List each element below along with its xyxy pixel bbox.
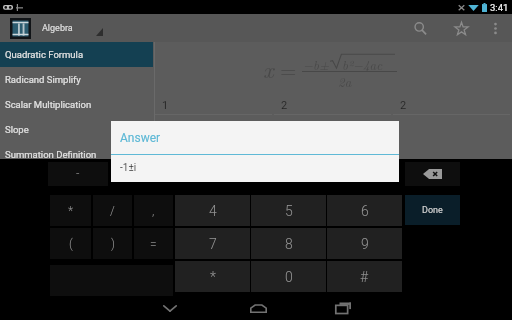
- button[interactable]: *: [50, 195, 91, 226]
- button[interactable]: Radicand Simplify: [0, 67, 155, 92]
- staticText: Quadratic Formula: [5, 49, 84, 60]
- button[interactable]: ): [93, 228, 132, 259]
- staticText: =: [150, 237, 157, 251]
- staticText: 2: [400, 99, 407, 112]
- staticText: b²−4ac: [342, 55, 383, 73]
- staticText: 3:41: [490, 2, 509, 13]
- staticText: 0: [285, 269, 293, 285]
- staticText: −b±: [303, 55, 329, 73]
- staticText: 9: [361, 236, 369, 252]
- staticText: -: [76, 167, 80, 181]
- staticText: 2a: [338, 72, 352, 90]
- staticText: 8: [285, 236, 293, 252]
- staticText: -1±i: [120, 162, 137, 174]
- staticText: /: [110, 204, 115, 218]
- button[interactable]: =: [134, 228, 173, 259]
- button[interactable]: Quadratic Formula: [0, 42, 155, 67]
- staticText: =: [280, 54, 297, 84]
- button[interactable]: Back: [154, 296, 186, 320]
- staticText: Scalar Multiplication: [5, 99, 92, 110]
- staticText: #: [360, 269, 369, 285]
- button[interactable]: Scalar Multiplication: [0, 92, 155, 117]
- staticText: 1: [162, 99, 169, 112]
- button[interactable]: -: [48, 162, 108, 186]
- button[interactable]: (: [50, 228, 91, 259]
- staticText: Radicand Simplify: [5, 74, 81, 85]
- staticText: x: [263, 52, 274, 85]
- button[interactable]: Slope: [0, 117, 155, 142]
- staticText: (: [69, 237, 73, 251]
- button[interactable]: 0: [251, 261, 326, 292]
- button[interactable]: *: [175, 261, 250, 292]
- staticText: *: [210, 269, 216, 285]
- staticText: *: [68, 204, 74, 218]
- staticText: Algebra: [42, 23, 73, 34]
- button[interactable]: /: [93, 195, 132, 226]
- button[interactable]: Recent apps: [327, 296, 359, 320]
- staticText: ): [111, 237, 115, 251]
- button[interactable]: Done: [405, 195, 460, 225]
- staticText: 2: [281, 99, 288, 112]
- staticText: Done: [422, 205, 443, 216]
- button[interactable]: ,: [134, 195, 173, 226]
- button[interactable]: Search: [398, 14, 442, 42]
- button[interactable]: Answer: [111, 121, 399, 182]
- staticText: ,: [152, 204, 155, 218]
- button[interactable]: Favorite: [442, 14, 480, 42]
- button[interactable]: #: [327, 261, 402, 292]
- staticText: 6: [361, 203, 369, 219]
- button[interactable]: Summation Definition: [0, 142, 155, 159]
- button[interactable]: More options: [480, 14, 510, 42]
- staticText: Slope: [5, 124, 29, 135]
- staticText: 5: [285, 203, 293, 219]
- button[interactable]: 4: [175, 195, 250, 226]
- button[interactable]: Algebra: [10, 14, 103, 42]
- button[interactable]: 9: [327, 228, 402, 259]
- button[interactable]: Home: [242, 296, 274, 320]
- button[interactable]: Backspace: [405, 162, 460, 186]
- button[interactable]: 8: [251, 228, 326, 259]
- button[interactable]: 5: [251, 195, 326, 226]
- staticText: 7: [209, 236, 217, 252]
- staticText: Answer: [120, 131, 161, 145]
- staticText: Summation Definition: [5, 149, 97, 159]
- staticText: 4: [209, 203, 217, 219]
- button[interactable]: 6: [327, 195, 402, 226]
- button[interactable]: 7: [175, 228, 250, 259]
